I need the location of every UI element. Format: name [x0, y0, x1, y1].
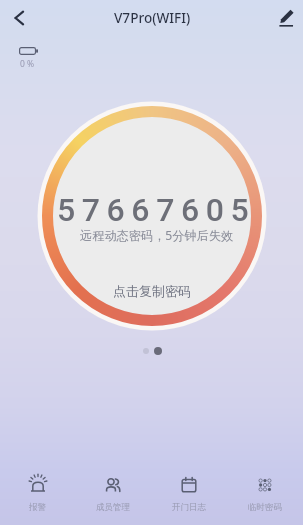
button[interactable]: 点击复制密码 — [105, 280, 199, 302]
staticText: 57667605 — [57, 191, 256, 229]
button[interactable]: 成员管理 — [75, 456, 151, 525]
button[interactable]: 临时密码 — [227, 456, 303, 525]
button[interactable]: 报警 — [0, 456, 75, 525]
button[interactable]: Edit — [275, 6, 297, 28]
staticText: 0 % — [20, 58, 35, 70]
staticText: 报警 — [29, 502, 46, 513]
staticText: 成员管理 — [96, 502, 130, 513]
staticText: V7Pro(WIFI) — [114, 8, 191, 27]
staticText: 开门日志 — [172, 502, 206, 513]
button[interactable]: 开门日志 — [151, 456, 227, 525]
button[interactable]: Back — [7, 6, 31, 30]
staticText: 远程动态密码，5分钟后失效 — [80, 227, 234, 244]
staticText: 临时密码 — [248, 502, 282, 513]
staticText: 点击复制密码 — [113, 283, 191, 299]
